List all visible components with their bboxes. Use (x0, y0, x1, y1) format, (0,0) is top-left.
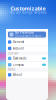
staticText: MORE (8, 68, 15, 71)
staticText: Account (13, 47, 24, 50)
staticText: Unlock every feature (15, 34, 42, 38)
staticText: General (13, 40, 24, 44)
staticText: Customizable (10, 5, 45, 12)
button[interactable]: General (6, 39, 48, 45)
staticText: Go Premium (15, 31, 34, 34)
staticText: You can change every day (10, 11, 46, 14)
staticText: About (13, 73, 22, 76)
button[interactable]: Compact (6, 62, 48, 68)
button[interactable]: Dark mode (6, 55, 48, 61)
staticText: DISPLAY (8, 52, 19, 55)
button[interactable]: Account (6, 45, 48, 51)
button[interactable]: Go Premium (8, 31, 46, 37)
button[interactable]: About (6, 72, 48, 78)
staticText: Dark mode (13, 57, 27, 60)
staticText: Compact (13, 63, 24, 66)
